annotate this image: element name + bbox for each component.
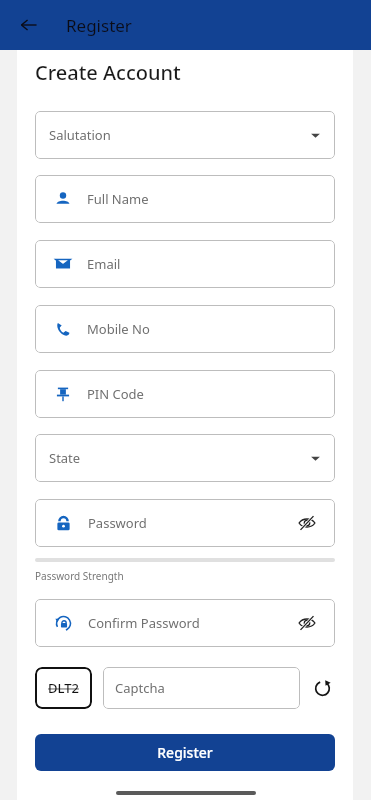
button[interactable]: Captcha image DLT2 <box>35 667 92 709</box>
button[interactable]: Toggle password visibility <box>295 611 319 635</box>
other: Phone <box>55 321 71 337</box>
other: Email <box>55 256 71 272</box>
button[interactable]: Confirm lock <box>35 599 335 647</box>
button[interactable]: State <box>35 434 335 482</box>
button[interactable]: Phone <box>35 305 335 353</box>
staticText: Password Strength <box>35 569 124 583</box>
staticText: Create Account <box>35 59 181 86</box>
staticText: Captcha <box>115 679 165 697</box>
button[interactable]: Back <box>14 10 44 40</box>
other: PIN <box>55 386 71 402</box>
staticText: Register <box>157 743 213 762</box>
button[interactable]: Email <box>35 240 335 288</box>
other: Open State <box>310 453 321 464</box>
button[interactable]: Person <box>35 175 335 223</box>
button[interactable]: Register <box>35 734 335 771</box>
button[interactable]: Refresh captcha <box>309 675 335 701</box>
other: Lock <box>55 515 72 532</box>
button[interactable]: Captcha <box>103 667 300 709</box>
button[interactable]: PIN <box>35 370 335 418</box>
button[interactable]: Lock <box>35 499 335 547</box>
other: Confirm lock <box>55 615 72 632</box>
staticText: DLT2 <box>48 679 79 697</box>
staticText: Confirm Password <box>88 614 295 632</box>
other: Open Salutation <box>310 130 321 141</box>
staticText: Mobile No <box>87 320 150 338</box>
staticText: Salutation <box>49 126 310 144</box>
staticText: State <box>49 449 310 467</box>
staticText: Register <box>66 14 132 37</box>
staticText: Password <box>88 514 295 532</box>
staticText: Email <box>87 255 121 273</box>
staticText: Full Name <box>87 190 149 208</box>
staticText: PIN Code <box>87 385 144 403</box>
button[interactable]: Toggle password visibility <box>295 511 319 535</box>
button[interactable]: Salutation <box>35 111 335 159</box>
other: Person <box>55 191 71 207</box>
